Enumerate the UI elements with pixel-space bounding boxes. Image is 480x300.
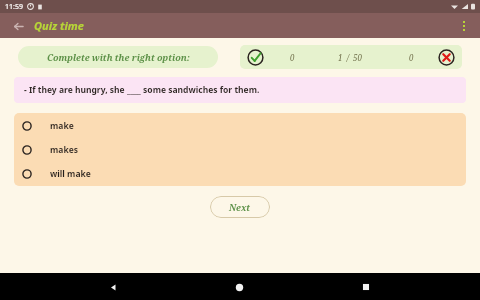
staticText: Quiz time <box>34 18 84 33</box>
button[interactable]: Back <box>8 16 28 36</box>
staticText: Next <box>229 201 251 213</box>
staticText: make <box>50 120 74 132</box>
button[interactable]: will make <box>14 162 466 186</box>
button[interactable]: Correct answers <box>246 48 265 67</box>
staticText: Complete with the right option: <box>47 51 190 63</box>
button[interactable]: More options <box>454 16 474 36</box>
button[interactable]: makes <box>14 138 466 162</box>
staticText: - If they are hungry, she ____ some sand… <box>24 84 260 96</box>
button[interactable]: Next <box>210 196 270 218</box>
button[interactable]: make <box>14 113 466 138</box>
button[interactable]: - If they are hungry, she ____ some sand… <box>14 77 466 103</box>
staticText: will make <box>50 168 91 180</box>
button[interactable]: Wrong answers <box>437 48 456 67</box>
staticText: 11:59 <box>5 2 23 12</box>
staticText: makes <box>50 144 78 156</box>
button[interactable]: Home <box>226 274 252 300</box>
staticText: 0 <box>409 52 414 63</box>
staticText: 0 <box>290 52 295 63</box>
button[interactable]: Recent apps <box>353 274 379 300</box>
button[interactable]: Complete with the right option: <box>18 46 218 68</box>
staticText: 1 / 50 <box>338 52 363 63</box>
button[interactable]: Back <box>100 274 126 300</box>
